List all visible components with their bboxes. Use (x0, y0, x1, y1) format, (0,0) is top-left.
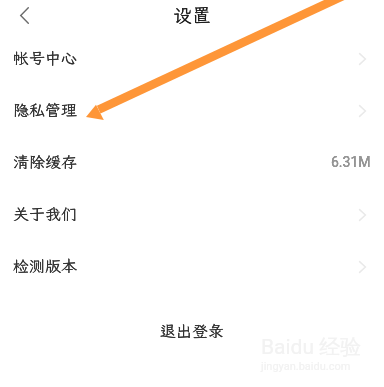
staticText: 关于我们 (13, 203, 78, 224)
button[interactable]: 关于我们 (0, 187, 384, 239)
staticText: 设置 (173, 2, 212, 27)
staticText: 退出登录 (160, 320, 225, 341)
staticText: 隐私管理 (13, 99, 78, 120)
staticText: Baidu 经验 (261, 334, 362, 360)
button[interactable]: 检测版本 (0, 239, 384, 291)
staticText: 退出登录 (160, 320, 225, 341)
staticText: 帐号中心 (13, 47, 78, 68)
staticText: 设置 (173, 2, 212, 27)
staticText: 设置 (173, 2, 212, 27)
staticText: 6.31M (331, 154, 371, 170)
staticText: 关于我们 (13, 203, 78, 224)
staticText: 隐私管理 (13, 99, 78, 120)
staticText: 检测版本 (13, 255, 78, 276)
staticText: 退出登录 (160, 320, 225, 341)
staticText: 清除缓存 (13, 151, 78, 172)
button[interactable]: 帐号中心 (0, 31, 384, 83)
staticText: 检测版本 (13, 255, 78, 276)
button[interactable]: Back (0, 0, 48, 31)
staticText: 清除缓存 (13, 151, 78, 172)
button[interactable]: 退出登录 (0, 313, 384, 347)
staticText: 6.31M (331, 154, 371, 170)
staticText: jingyan.baidu.com (261, 360, 351, 373)
staticText: 检测版本 (13, 255, 78, 276)
staticText: 关于我们 (13, 203, 78, 224)
button[interactable]: 清除缓存 (0, 135, 384, 187)
staticText: 隐私管理 (13, 99, 78, 120)
staticText: 帐号中心 (13, 47, 78, 68)
button[interactable]: 隐私管理 (0, 83, 384, 135)
staticText: 帐号中心 (13, 47, 78, 68)
staticText: 清除缓存 (13, 151, 78, 172)
staticText: 6.31M (331, 154, 371, 170)
